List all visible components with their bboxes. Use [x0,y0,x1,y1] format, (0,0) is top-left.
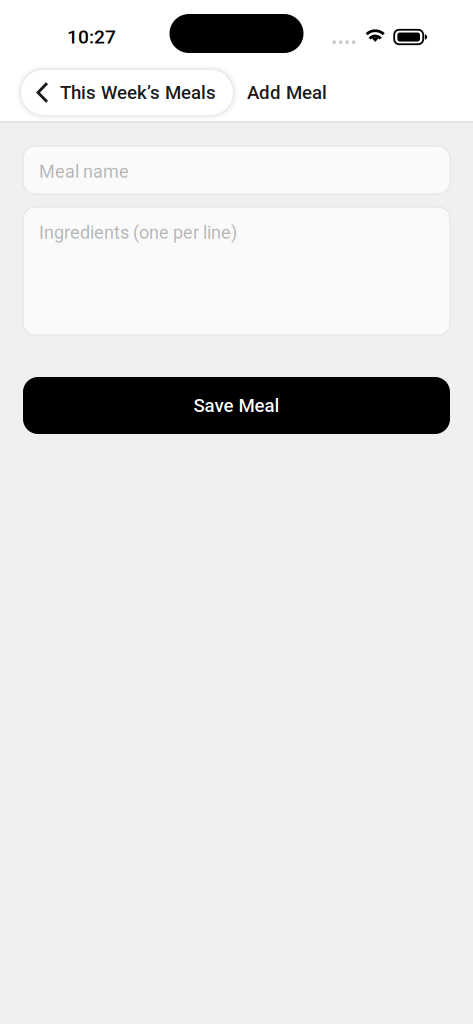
staticText: Save Meal [193,395,279,416]
staticText: Meal name [39,161,129,182]
staticText: This Week’s Meals [60,82,216,103]
button[interactable]: Save Meal [23,377,450,434]
staticText: Ingredients (one per line) [39,222,237,243]
staticText: Add Meal [247,82,327,103]
button[interactable]: This Week’s Meals [21,70,233,115]
button[interactable]: Add Meal [233,70,327,115]
staticText: 10:27 [67,26,116,48]
